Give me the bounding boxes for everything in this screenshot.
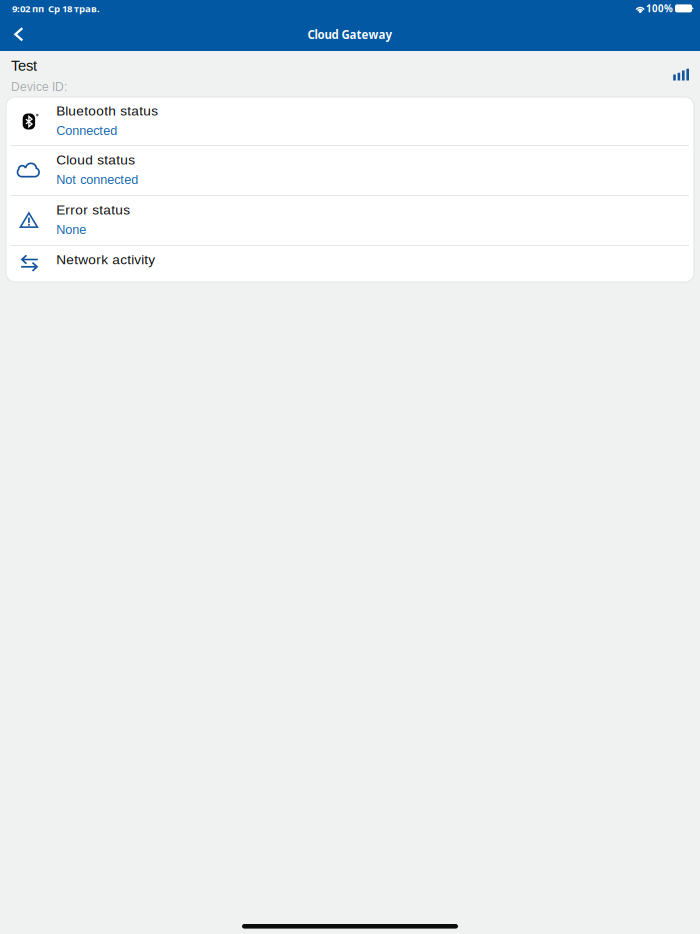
staticText: Bluetooth status	[56, 103, 158, 118]
staticText: 100%	[646, 2, 673, 15]
staticText: Error status	[56, 202, 130, 217]
button[interactable]: Error status	[6, 196, 694, 245]
staticText: Cloud Gateway	[307, 27, 392, 42]
staticText: Ср 18 трав.	[48, 2, 100, 15]
button[interactable]: Bluetooth status	[6, 97, 694, 145]
button[interactable]: Network activity	[6, 246, 694, 282]
staticText: Not connected	[56, 173, 138, 187]
staticText: Cloud status	[56, 152, 135, 167]
staticText: Connected	[56, 124, 117, 138]
staticText: Network activity	[56, 252, 155, 267]
button[interactable]: Cloud status	[6, 146, 694, 195]
button[interactable]: Back	[0, 18, 44, 51]
staticText: None	[56, 223, 86, 237]
staticText: Test	[11, 57, 37, 74]
staticText: 9:02 пп	[12, 2, 44, 15]
staticText: Device ID:	[11, 80, 67, 93]
